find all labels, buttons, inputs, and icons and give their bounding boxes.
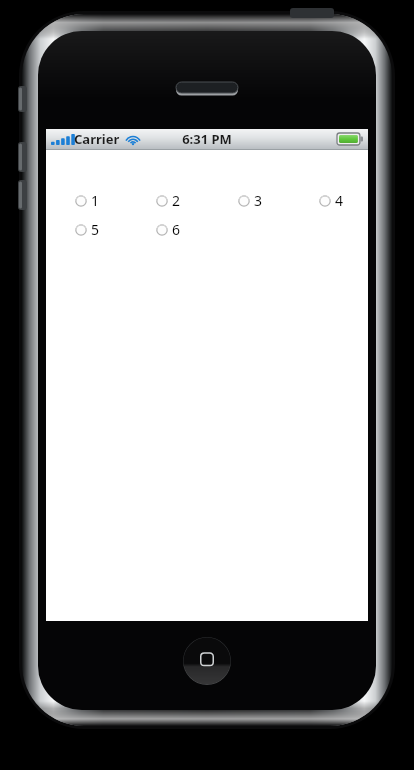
staticText: 1 (91, 191, 100, 210)
other: Wi-Fi (126, 134, 140, 145)
staticText: 6:31 PM (182, 130, 232, 148)
staticText: 6 (172, 220, 181, 239)
staticText: 3 (254, 191, 263, 210)
button[interactable]: 5 (74, 219, 101, 240)
other: Battery (337, 133, 363, 145)
button[interactable]: 3 (237, 190, 264, 211)
button[interactable]: 4 (318, 190, 345, 211)
button[interactable]: Home (183, 637, 231, 685)
button[interactable]: 2 (155, 190, 182, 211)
staticText: 5 (91, 220, 100, 239)
staticText: 2 (172, 191, 181, 210)
button[interactable]: 1 (74, 190, 101, 211)
staticText: Carrier (74, 130, 120, 148)
staticText: 4 (335, 191, 344, 210)
button[interactable]: 6 (155, 219, 182, 240)
